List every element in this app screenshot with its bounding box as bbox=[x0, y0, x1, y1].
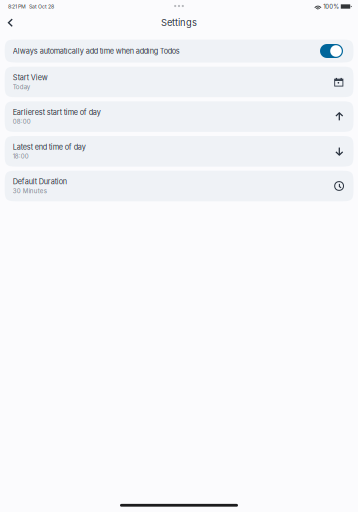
staticText: Today bbox=[13, 83, 30, 91]
staticText: 08:00 bbox=[13, 118, 31, 125]
staticText: Sat Oct 28 bbox=[26, 3, 54, 10]
staticText: Always automatically add time when addin… bbox=[13, 47, 180, 55]
button[interactable]: Start View bbox=[5, 67, 353, 97]
button[interactable]: Earlierest start time of day bbox=[5, 101, 353, 132]
button[interactable]: Always automatically add time when addin… bbox=[5, 39, 353, 62]
staticText: Default Duration bbox=[13, 177, 67, 186]
staticText: 30 Minutes bbox=[13, 187, 47, 195]
staticText: Earlierest start time of day bbox=[13, 108, 101, 117]
button[interactable]: Latest end time of day bbox=[5, 136, 353, 167]
button[interactable]: Back bbox=[0, 13, 22, 37]
staticText: 100% bbox=[321, 3, 339, 10]
staticText: Latest end time of day bbox=[13, 143, 86, 151]
staticText: Start View bbox=[13, 73, 48, 82]
staticText: 8:21 PM bbox=[8, 3, 26, 10]
staticText: 18:00 bbox=[13, 153, 29, 160]
button[interactable]: Default Duration bbox=[5, 171, 353, 201]
staticText: Settings bbox=[161, 17, 197, 28]
